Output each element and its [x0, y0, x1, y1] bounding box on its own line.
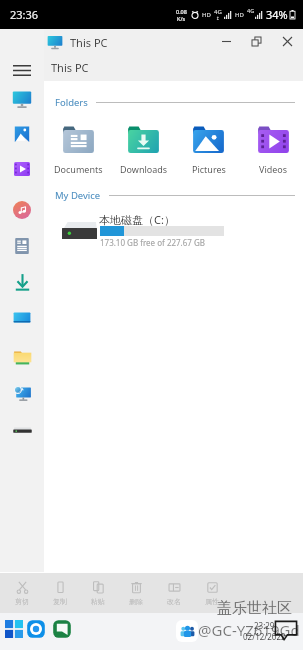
button[interactable]: 改名	[155, 573, 193, 613]
staticText: HD	[202, 11, 211, 19]
staticText: Downloads	[120, 163, 168, 175]
button[interactable]: Music	[0, 195, 44, 225]
button[interactable]: Search	[24, 616, 48, 642]
staticText: 4G	[214, 8, 222, 16]
button[interactable]: Folder	[0, 342, 44, 372]
staticText: 改名	[167, 597, 181, 606]
staticText: 删除	[129, 597, 143, 606]
button[interactable]: This PC	[0, 84, 44, 114]
staticText: 02/12/2022	[243, 631, 286, 642]
staticText: This PC	[70, 35, 108, 50]
staticText: 复制	[53, 597, 67, 606]
staticText: Folders	[55, 96, 88, 109]
button[interactable]: People	[176, 620, 198, 642]
button[interactable]: Drive	[0, 414, 44, 444]
staticText: @GC-YZ619Gd	[198, 620, 300, 640]
staticText: 盖乐世社区	[217, 599, 292, 618]
button[interactable]: 粘贴	[79, 573, 117, 613]
staticText: My Device	[55, 189, 101, 202]
button[interactable]: 剪切	[3, 573, 41, 613]
button[interactable]: Videos	[241, 123, 303, 175]
staticText: K/s	[177, 15, 186, 22]
button[interactable]: Desktop	[0, 303, 44, 333]
staticText: 剪切	[15, 597, 29, 606]
button[interactable]: Start	[2, 616, 26, 642]
button[interactable]: Documents	[0, 231, 44, 261]
staticText: This PC	[51, 60, 89, 75]
staticText: Documents	[54, 163, 103, 175]
staticText: 23:36	[10, 7, 39, 22]
button[interactable]: Videos	[0, 154, 44, 184]
staticText: 173.10 GB free of 227.67 GB	[100, 237, 206, 248]
staticText: 4G	[247, 7, 255, 14]
staticText: Videos	[259, 163, 288, 175]
button[interactable]: Documents	[46, 123, 111, 175]
staticText: 粘贴	[91, 597, 105, 606]
staticText: 34%	[266, 7, 288, 22]
staticText: Pictures	[192, 163, 226, 175]
button[interactable]: Pictures	[0, 119, 44, 149]
button[interactable]: Maximize	[241, 29, 271, 54]
button[interactable]: Downloads	[0, 267, 44, 297]
button[interactable]: Minimize	[211, 29, 241, 54]
staticText: 本地磁盘（C:）	[99, 212, 175, 227]
staticText: 属性	[205, 597, 219, 606]
button[interactable]: Pictures	[176, 123, 241, 175]
button[interactable]: Network	[0, 378, 44, 408]
staticText: HD	[235, 11, 244, 19]
button[interactable]: 属性	[193, 573, 231, 613]
staticText: ↕	[216, 16, 220, 21]
button[interactable]: Chat	[50, 616, 74, 642]
button[interactable]: Downloads	[111, 123, 176, 175]
staticText: 23:29	[254, 620, 275, 631]
staticText: 0.08	[176, 8, 187, 15]
button[interactable]: 复制	[41, 573, 79, 613]
button[interactable]: 删除	[117, 573, 155, 613]
button[interactable]: Close	[271, 29, 303, 54]
button[interactable]: 本地磁盘（C:）	[0, 210, 303, 246]
button[interactable]: Menu	[0, 58, 44, 82]
